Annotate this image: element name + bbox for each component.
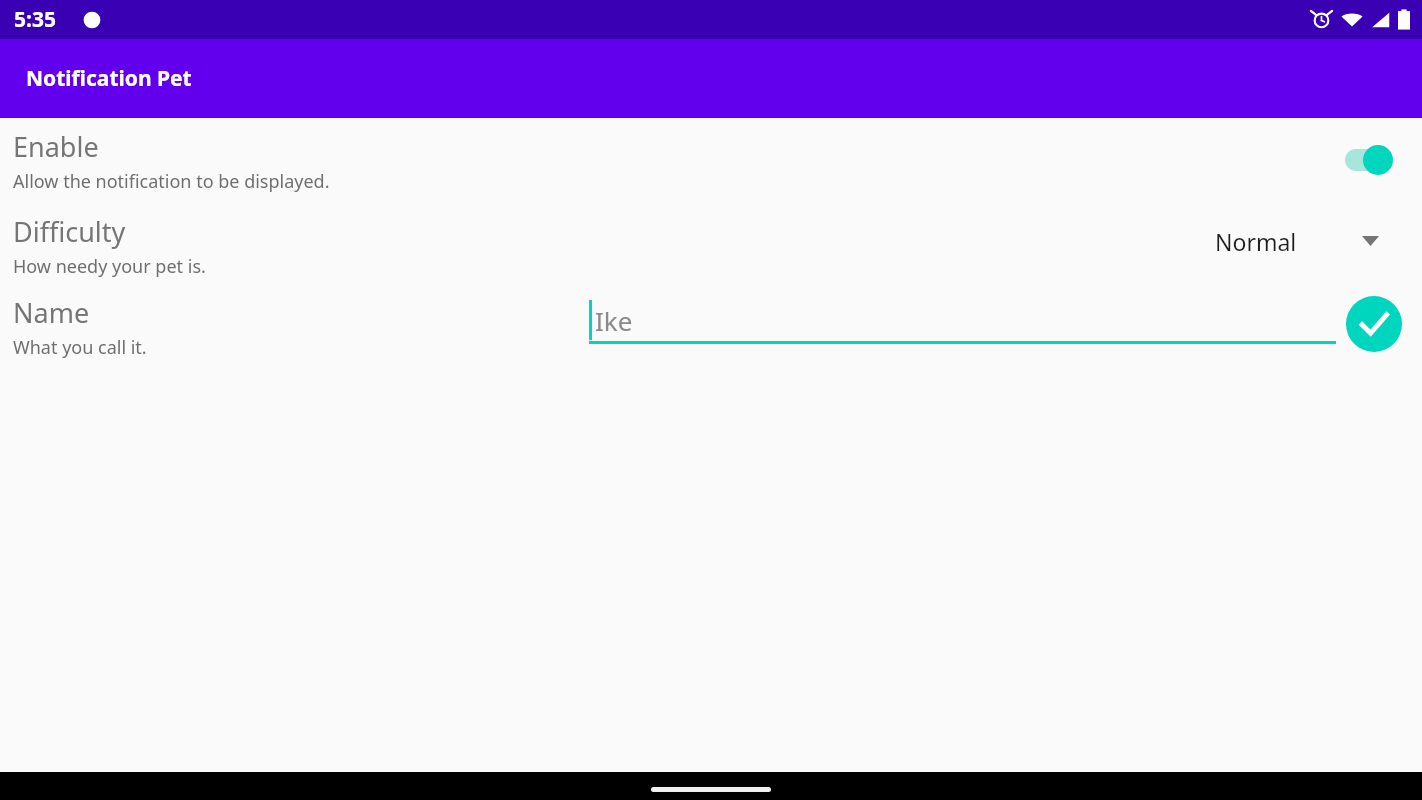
button[interactable]: Difficulty: Normal bbox=[1215, 217, 1379, 265]
staticText: What you call it. bbox=[13, 335, 147, 360]
staticText: 5:35 bbox=[14, 5, 56, 34]
button[interactable]: Confirm name bbox=[1346, 296, 1402, 352]
button[interactable]: Enable bbox=[0, 118, 1422, 203]
staticText: Name bbox=[13, 294, 90, 331]
staticText: How needy your pet is. bbox=[13, 254, 206, 279]
staticText: Ike bbox=[595, 303, 633, 338]
staticText: Allow the notification to be displayed. bbox=[13, 169, 330, 194]
staticText: Normal bbox=[1215, 226, 1297, 257]
button[interactable]: Pet name input bbox=[589, 292, 1336, 352]
staticText: Difficulty bbox=[13, 213, 126, 250]
staticText: Enable bbox=[13, 128, 99, 165]
button[interactable]: Difficulty bbox=[0, 203, 1422, 288]
staticText: Notification Pet bbox=[26, 64, 192, 93]
button[interactable]: Enable notification toggle bbox=[1343, 143, 1405, 177]
